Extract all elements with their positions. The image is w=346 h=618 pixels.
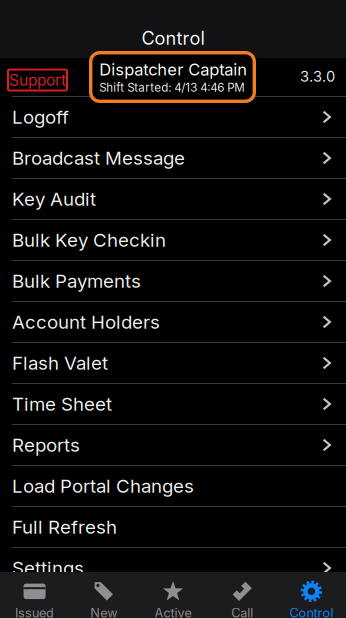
button[interactable]: New xyxy=(69,572,138,618)
staticText: Support xyxy=(9,71,66,89)
button[interactable]: Full Refresh xyxy=(0,507,346,547)
staticText: Active xyxy=(154,605,191,618)
button[interactable]: Control xyxy=(277,572,346,618)
button[interactable]: Account Holders xyxy=(0,302,346,342)
staticText: Dispatcher Captain xyxy=(99,59,247,79)
button[interactable]: Bulk Key Checkin xyxy=(0,220,346,260)
button[interactable]: Bulk Payments xyxy=(0,261,346,301)
staticText: 3.3.0 xyxy=(300,68,335,85)
staticText: Shift Started: 4/13 4:46 PM xyxy=(99,80,244,94)
button[interactable]: Dispatcher Captain xyxy=(91,53,254,101)
staticText: Time Sheet xyxy=(12,393,112,415)
staticText: Control xyxy=(141,27,204,49)
staticText: Call xyxy=(231,605,253,618)
staticText: Full Refresh xyxy=(12,516,117,538)
staticText: Key Audit xyxy=(12,188,96,210)
staticText: Reports xyxy=(12,434,80,456)
staticText: Broadcast Message xyxy=(12,147,185,169)
staticText: Issued xyxy=(15,605,54,618)
button[interactable]: Logoff xyxy=(0,97,346,137)
button[interactable]: Issued xyxy=(0,572,69,618)
button[interactable]: Time Sheet xyxy=(0,384,346,424)
button[interactable]: Load Portal Changes xyxy=(0,466,346,506)
staticText: Bulk Key Checkin xyxy=(12,229,166,251)
button[interactable]: Active xyxy=(138,572,208,618)
button[interactable]: Reports xyxy=(0,425,346,465)
staticText: Bulk Payments xyxy=(12,270,141,292)
button[interactable]: Support xyxy=(8,69,67,90)
button[interactable]: Call xyxy=(208,572,277,618)
staticText: Settings xyxy=(12,557,84,579)
button[interactable]: Key Audit xyxy=(0,179,346,219)
staticText: Flash Valet xyxy=(12,352,108,374)
staticText: Logoff xyxy=(12,106,69,128)
button[interactable]: Settings xyxy=(0,548,346,588)
staticText: Load Portal Changes xyxy=(12,475,194,497)
button[interactable]: Broadcast Message xyxy=(0,138,346,178)
button[interactable]: About xyxy=(0,589,346,618)
staticText: About xyxy=(12,598,64,618)
staticText: Control xyxy=(289,605,333,618)
button[interactable]: Flash Valet xyxy=(0,343,346,383)
staticText: Account Holders xyxy=(12,311,160,333)
staticText: New xyxy=(90,605,117,618)
